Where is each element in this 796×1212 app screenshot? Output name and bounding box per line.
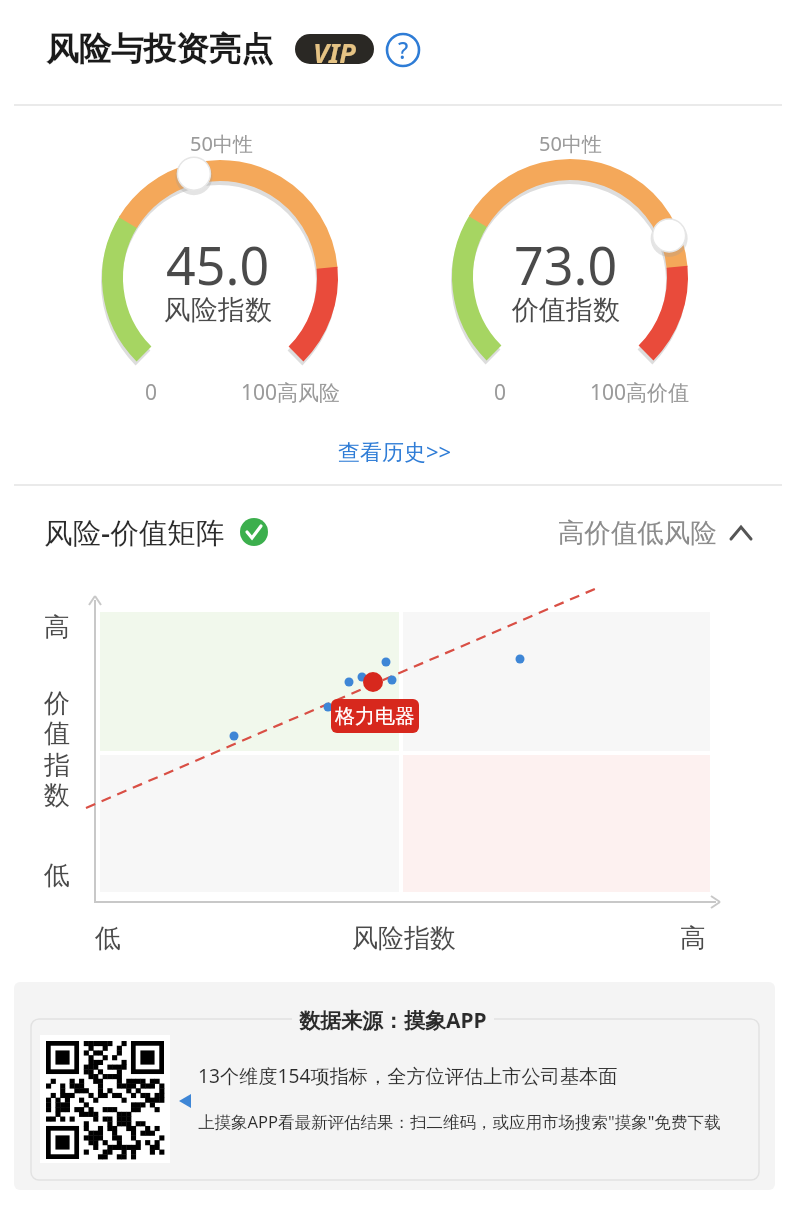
- button[interactable]: [387, 34, 419, 66]
- staticText: 价: [44, 687, 70, 720]
- staticText: 指: [44, 749, 70, 782]
- button[interactable]: VIP: [295, 34, 374, 64]
- staticText: ?: [398, 34, 409, 65]
- staticText: 数: [44, 779, 70, 812]
- staticText: 数据来源：摸象APP: [299, 1006, 487, 1035]
- staticText: 高价值低风险: [558, 516, 717, 549]
- staticText: 风险-价值矩阵: [44, 513, 225, 552]
- staticText: 上摸象APP看最新评估结果：扫二维码，或应用市场搜索"摸象"免费下载: [198, 1110, 721, 1133]
- staticText: 0: [145, 378, 158, 407]
- staticText: 13个维度154项指标，全方位评估上市公司基本面: [198, 1062, 618, 1088]
- staticText: 风险与投资亮点: [46, 29, 274, 70]
- staticText: 高: [680, 922, 706, 955]
- staticText: 价值指数: [512, 293, 620, 327]
- staticText: 45.0: [166, 229, 270, 300]
- staticText: 值: [44, 717, 70, 750]
- staticText: 低: [95, 922, 121, 955]
- staticText: 查看历史>>: [338, 436, 452, 466]
- staticText: 100高价值: [590, 378, 690, 407]
- staticText: VIP: [313, 34, 356, 64]
- staticText: 低: [44, 859, 70, 892]
- staticText: 0: [494, 378, 507, 407]
- staticText: 格力电器: [335, 704, 415, 729]
- staticText: 50中性: [539, 130, 602, 157]
- staticText: 风险指数: [164, 293, 272, 327]
- staticText: 风险指数: [352, 922, 456, 955]
- staticText: 高: [44, 611, 70, 644]
- staticText: 50中性: [190, 130, 253, 157]
- button[interactable]: [334, 438, 458, 466]
- button[interactable]: [550, 515, 760, 549]
- button[interactable]: [14, 982, 775, 1190]
- staticText: 73.0: [514, 229, 618, 300]
- staticText: 100高风险: [241, 378, 341, 407]
